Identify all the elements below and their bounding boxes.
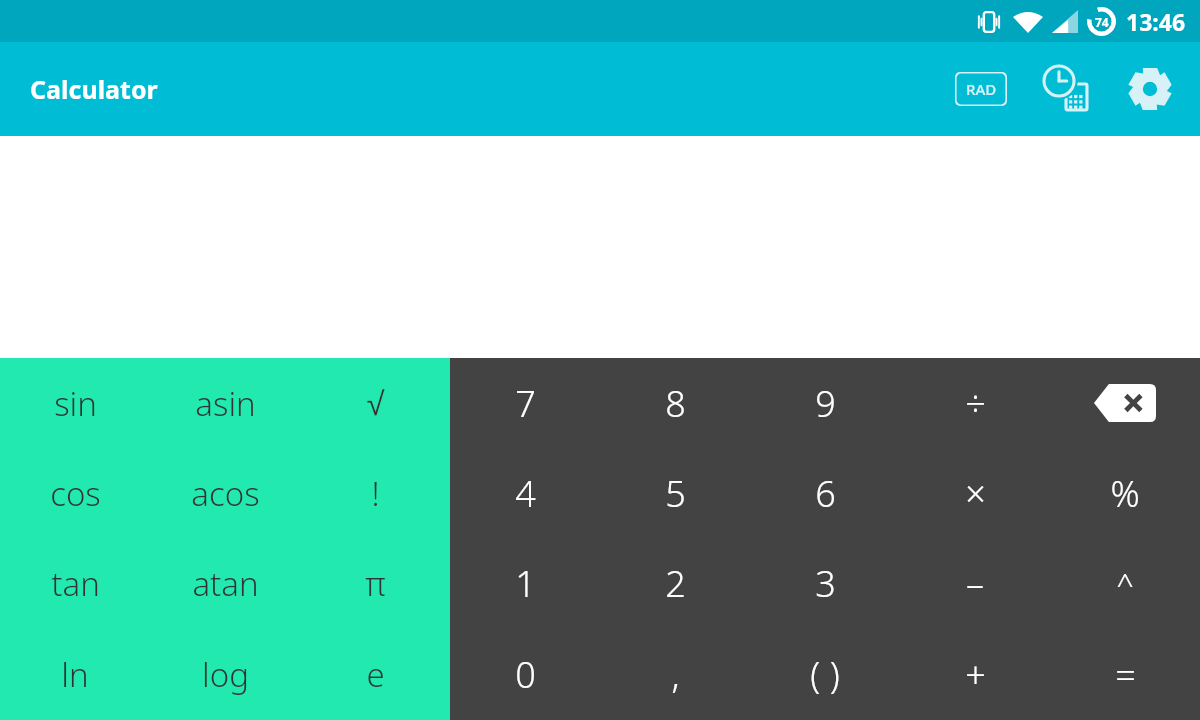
button[interactable]: log	[150, 629, 300, 720]
staticText: 8	[665, 379, 686, 428]
staticText: e	[366, 652, 385, 697]
staticText: atan	[192, 561, 259, 606]
staticText: cos	[50, 471, 101, 516]
staticText: ^	[1116, 563, 1134, 604]
staticText: sin	[54, 381, 97, 426]
button[interactable]: 1	[450, 538, 600, 629]
staticText: ln	[61, 652, 89, 697]
button[interactable]: √	[300, 358, 450, 448]
button[interactable]: 6	[750, 448, 900, 538]
staticText: log	[202, 652, 249, 697]
staticText: ,	[671, 650, 680, 699]
button[interactable]: –	[900, 538, 1050, 629]
staticText: =	[1115, 650, 1136, 699]
staticText: 5	[665, 469, 686, 518]
staticText: tan	[51, 561, 100, 606]
staticText: π	[365, 561, 386, 606]
button[interactable]: 5	[600, 448, 750, 538]
staticText: 4	[515, 469, 536, 518]
button[interactable]: 7	[450, 358, 600, 448]
button[interactable]: 9	[750, 358, 900, 448]
button[interactable]: !	[300, 448, 450, 538]
staticText: 13:46	[1126, 6, 1186, 37]
staticText: RAD	[966, 79, 997, 99]
button[interactable]: 2	[600, 538, 750, 629]
button[interactable]: sin	[0, 358, 150, 448]
button[interactable]: 0	[450, 629, 600, 720]
staticText: +	[965, 650, 986, 699]
button[interactable]: +	[900, 629, 1050, 720]
button[interactable]: ln	[0, 629, 150, 720]
button[interactable]: =	[1050, 629, 1200, 720]
staticText: 6	[815, 469, 836, 518]
staticText: acos	[191, 471, 260, 516]
button[interactable]: 8	[600, 358, 750, 448]
button[interactable]: e	[300, 629, 450, 720]
staticText: 74	[1095, 14, 1109, 30]
button[interactable]: atan	[150, 538, 300, 629]
button[interactable]: ( )	[750, 629, 900, 720]
staticText: ÷	[965, 379, 986, 428]
staticText: ( )	[810, 650, 840, 699]
button[interactable]: Settings	[1122, 61, 1178, 117]
button[interactable]: 4	[450, 448, 600, 538]
staticText: 7	[515, 379, 536, 428]
button[interactable]: tan	[0, 538, 150, 629]
staticText: 3	[815, 559, 836, 608]
staticText: %	[1110, 469, 1140, 518]
button[interactable]: cos	[0, 448, 150, 538]
button[interactable]: Backspace	[1050, 358, 1200, 448]
button[interactable]: ×	[900, 448, 1050, 538]
button[interactable]: 3	[750, 538, 900, 629]
button[interactable]: acos	[150, 448, 300, 538]
button[interactable]: ÷	[900, 358, 1050, 448]
button[interactable]: π	[300, 538, 450, 629]
staticText: Calculator	[30, 72, 158, 106]
button[interactable]: %	[1050, 448, 1200, 538]
button[interactable]: asin	[150, 358, 300, 448]
button[interactable]: History	[1038, 61, 1094, 117]
staticText: 0	[515, 650, 536, 699]
staticText: √	[366, 385, 385, 422]
button[interactable]: ^	[1050, 538, 1200, 629]
staticText: ×	[965, 469, 986, 518]
staticText: –	[966, 559, 984, 608]
staticText: 9	[815, 379, 836, 428]
staticText: 1	[515, 559, 536, 608]
button[interactable]: ,	[600, 629, 750, 720]
button[interactable]: Angle unit RAD	[950, 58, 1012, 120]
staticText: !	[371, 471, 380, 516]
staticText: 2	[665, 559, 686, 608]
staticText: asin	[195, 381, 256, 426]
